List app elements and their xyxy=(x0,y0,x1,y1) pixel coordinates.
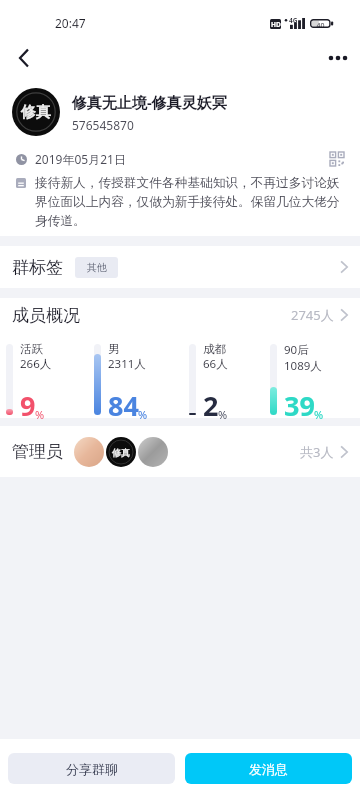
staticText: 40 xyxy=(310,21,331,31)
staticText: 4G xyxy=(289,16,298,25)
staticText: 管理员 xyxy=(12,441,63,462)
staticText: 共3人 xyxy=(300,443,334,461)
staticText: 576545870 xyxy=(72,117,134,133)
button[interactable]: 修真 xyxy=(0,76,360,148)
staticText: 分享群聊 xyxy=(66,761,118,777)
staticText: 2 xyxy=(203,387,219,424)
staticText: % xyxy=(35,407,45,422)
staticText: 2745人 xyxy=(291,306,334,324)
button[interactable]: 群标签 xyxy=(0,246,360,288)
staticText: 活跃 xyxy=(20,342,43,356)
staticText: 男 xyxy=(108,342,120,356)
staticText: 9 xyxy=(20,387,36,424)
button[interactable]: 发消息 xyxy=(185,753,352,784)
button[interactable]: QR code xyxy=(328,150,346,168)
staticText: 修真 xyxy=(112,447,130,458)
staticText: 39 xyxy=(284,387,315,424)
staticText: 90后 xyxy=(284,342,309,358)
staticText: 发消息 xyxy=(249,761,288,777)
staticText: 接待新人，传授群文件各种基础知识，不再过多讨论妖界位面以上内容，仅做为新手接待处… xyxy=(35,175,343,229)
button[interactable]: 成员概况 xyxy=(0,298,360,332)
button[interactable]: Back xyxy=(4,40,44,76)
staticText: HD xyxy=(271,20,281,29)
staticText: 修真 xyxy=(21,103,51,122)
staticText: 1089人 xyxy=(284,358,322,374)
staticText: % xyxy=(314,407,324,422)
staticText: 群标签 xyxy=(12,257,63,278)
staticText: 其他 xyxy=(87,261,107,274)
button[interactable]: 分享群聊 xyxy=(8,753,175,784)
button[interactable]: 管理员 xyxy=(0,426,360,477)
staticText: 成员概况 xyxy=(12,305,80,326)
staticText: % xyxy=(218,407,228,422)
staticText: 66人 xyxy=(203,356,228,372)
staticText: 84 xyxy=(108,387,139,424)
staticText: % xyxy=(138,407,148,422)
staticText: 2311人 xyxy=(108,356,146,372)
staticText: 修真无止境-修真灵妖冥 xyxy=(72,92,227,112)
button[interactable]: More options xyxy=(316,40,360,76)
staticText: 成都 xyxy=(203,342,226,356)
staticText: 20:47 xyxy=(55,15,86,31)
staticText: 2019年05月21日 xyxy=(35,151,126,167)
staticText: 266人 xyxy=(20,356,52,372)
